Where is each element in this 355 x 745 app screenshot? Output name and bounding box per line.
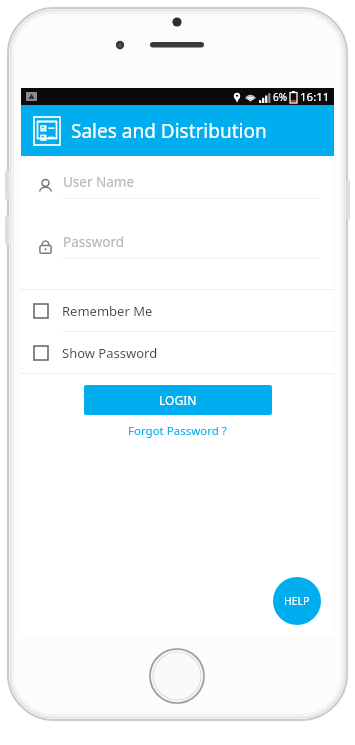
staticText: 16:11 [300,89,330,105]
staticText: Forgot Password ? [128,423,227,439]
staticText: 6% [273,90,288,104]
button[interactable]: Remember Me [21,290,334,331]
button[interactable]: Password [21,229,334,263]
button[interactable]: User [21,169,334,203]
button[interactable]: HELP [273,577,321,625]
other: Password [37,238,54,255]
other: User [37,178,54,195]
button[interactable]: LOGIN [84,385,272,415]
staticText: Remember Me [62,302,153,320]
staticText: Password [63,233,125,251]
other: App icon [33,116,61,146]
staticText: User Name [63,173,135,191]
button[interactable]: Show Password [21,332,334,373]
staticText: Sales and Distribution [71,118,267,144]
button[interactable]: Forgot Password ? [122,421,233,441]
staticText: HELP [284,594,310,608]
staticText: LOGIN [159,392,197,408]
staticText: Show Password [62,344,158,362]
